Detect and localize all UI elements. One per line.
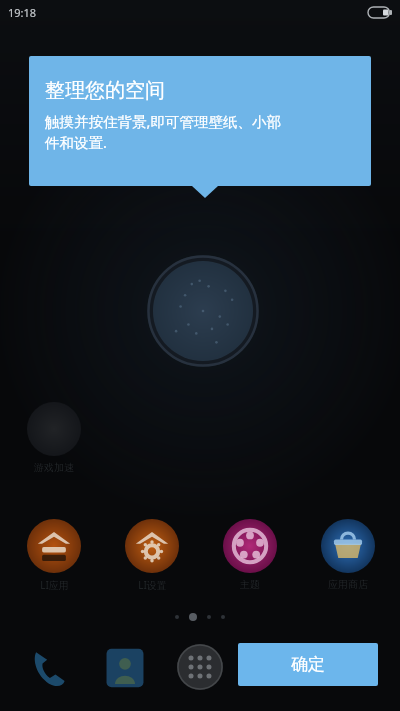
- button[interactable]: Clock widget: [147, 255, 259, 367]
- staticText: LI设置: [138, 578, 167, 592]
- button[interactable]: 整理您的空间: [29, 56, 371, 186]
- staticText: 19:18: [8, 5, 37, 20]
- button[interactable]: 确定: [238, 643, 378, 686]
- button[interactable]: 主题: [222, 519, 278, 591]
- staticText: LI应用: [40, 578, 69, 592]
- button[interactable]: Contacts: [104, 647, 146, 689]
- staticText: 游戏加速: [34, 461, 74, 474]
- button[interactable]: 应用商店: [320, 519, 376, 591]
- button[interactable]: Phone: [26, 645, 72, 691]
- staticText: 确定: [291, 654, 325, 675]
- staticText: 整理您的空间: [45, 78, 165, 103]
- button[interactable]: LI应用: [26, 519, 82, 592]
- button[interactable]: 游戏加速: [26, 402, 82, 474]
- button[interactable]: LI设置: [124, 519, 180, 592]
- staticText: 应用商店: [328, 578, 368, 591]
- staticText: 触摸并按住背景,即可管理壁纸、小部 件和设置.: [45, 111, 281, 153]
- staticText: 主题: [240, 578, 260, 591]
- button[interactable]: All apps: [177, 644, 223, 690]
